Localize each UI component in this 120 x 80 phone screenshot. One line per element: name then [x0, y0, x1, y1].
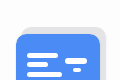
button[interactable]: Message card [16, 34, 100, 80]
